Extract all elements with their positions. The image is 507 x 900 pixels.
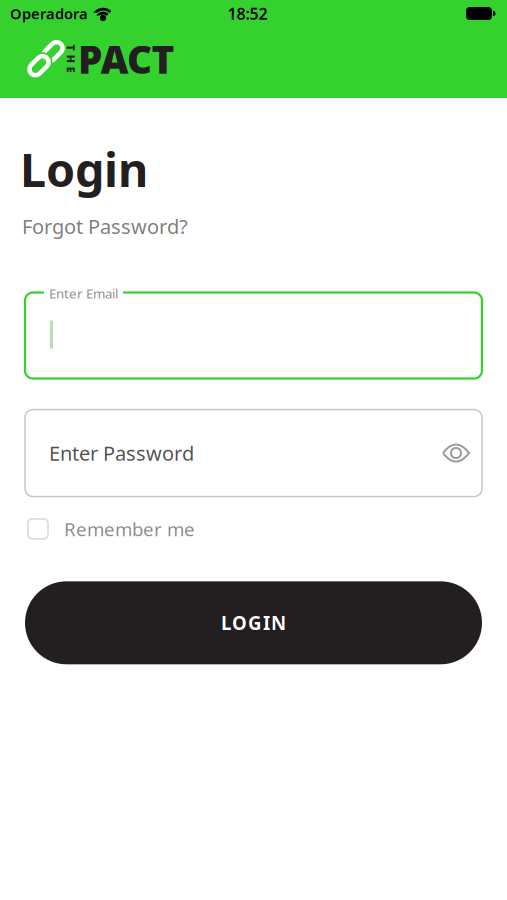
button[interactable]: Enter Password (25, 409, 482, 496)
staticText: E (68, 63, 74, 77)
staticText: T (68, 40, 74, 55)
button[interactable]: LOGIN (25, 581, 482, 664)
staticText: Forgot Password? (22, 213, 188, 240)
staticText: Enter Email (49, 284, 118, 302)
staticText: PACT (78, 33, 174, 84)
staticText: Remember me (64, 516, 195, 541)
button[interactable]: Enter Email (25, 292, 482, 378)
staticText: Operadora (10, 4, 88, 23)
staticText: Login (20, 138, 148, 200)
button[interactable]: Show password (442, 442, 470, 464)
button[interactable]: Remember me (25, 516, 195, 541)
staticText: 18:52 (227, 3, 267, 24)
staticText: Enter Password (49, 440, 194, 466)
staticText: H (67, 52, 75, 66)
staticText: LOGIN (221, 610, 286, 635)
button[interactable]: Forgot Password? (22, 213, 188, 240)
